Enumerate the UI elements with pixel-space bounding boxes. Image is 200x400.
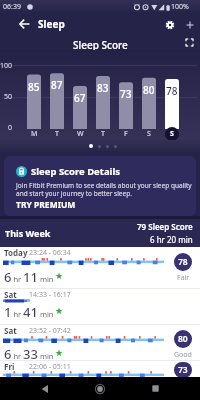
- staticText: ★: [55, 306, 64, 316]
- staticText: 100%: [171, 2, 189, 12]
- staticText: Fair: [177, 273, 190, 283]
- button[interactable]: TRY PREMIUM: [16, 199, 76, 211]
- staticText: This Week: [5, 227, 51, 239]
- staticText: 06:39: [3, 2, 21, 12]
- staticText: S: [170, 129, 174, 139]
- staticText: 85: [28, 80, 40, 92]
- staticText: 78: [166, 84, 178, 96]
- staticText: Sleep Score: [73, 38, 128, 50]
- staticText: 6 hr 33 min: [4, 345, 54, 361]
- staticText: M: [31, 129, 38, 139]
- button[interactable]: Fri: [0, 361, 200, 377]
- staticText: 6 hr 11 min: [4, 268, 54, 284]
- staticText: Fri: [4, 361, 15, 372]
- button[interactable]: [36, 380, 53, 397]
- staticText: W: [77, 129, 84, 139]
- staticText: Join Fitbit Premium to see details about…: [16, 181, 192, 198]
- staticText: 87: [51, 78, 63, 90]
- staticText: Sleep Score Details: [31, 165, 121, 178]
- staticText: Good: [174, 350, 192, 360]
- staticText: ★: [55, 348, 64, 358]
- button[interactable]: 80: [174, 330, 192, 348]
- button[interactable]: Sleep Score Details: [4, 156, 196, 216]
- staticText: 14:33 - 16:17: [29, 290, 71, 300]
- staticText: Sat: [4, 325, 17, 336]
- staticText: 100: [0, 61, 13, 71]
- button[interactable]: [16, 16, 33, 33]
- button[interactable]: 78: [174, 253, 192, 271]
- button[interactable]: [161, 16, 178, 33]
- staticText: T: [101, 129, 105, 139]
- staticText: TRY PREMIUM: [16, 199, 76, 211]
- staticText: 80: [178, 333, 188, 345]
- staticText: 83: [97, 81, 109, 93]
- staticText: F: [124, 129, 128, 139]
- staticText: Sat: [4, 289, 17, 300]
- staticText: 50: [4, 92, 13, 102]
- staticText: 6 hr 20 min: [150, 234, 193, 245]
- button[interactable]: Today: [0, 247, 200, 289]
- staticText: 0: [8, 123, 13, 133]
- staticText: 73: [120, 87, 132, 99]
- staticText: 23:24 - 06:34: [29, 248, 71, 258]
- button[interactable]: Sat: [0, 289, 200, 325]
- staticText: S: [147, 129, 151, 139]
- button[interactable]: [147, 380, 164, 397]
- staticText: 80: [143, 83, 155, 95]
- staticText: ★: [55, 271, 64, 281]
- staticText: 23:52 - 07:42: [29, 326, 71, 336]
- button[interactable]: [183, 36, 196, 49]
- staticText: 22:06 - 05:11: [29, 362, 71, 372]
- button[interactable]: [91, 380, 109, 398]
- staticText: 79 Sleep Score: [137, 221, 193, 232]
- staticText: 67: [74, 91, 86, 103]
- button[interactable]: S: [165, 127, 179, 141]
- staticText: 78: [178, 256, 188, 268]
- button[interactable]: 73: [174, 362, 192, 378]
- staticText: T: [55, 129, 59, 139]
- staticText: 73: [178, 364, 188, 376]
- button[interactable]: [181, 16, 198, 33]
- staticText: Sleep: [38, 17, 65, 31]
- staticText: 1 hr 41 min: [4, 303, 54, 319]
- staticText: Today: [4, 247, 28, 258]
- button[interactable]: Sat: [0, 325, 200, 361]
